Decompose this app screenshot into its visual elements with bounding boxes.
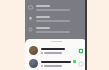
button[interactable]: Setting icon [25,13,87,24]
button[interactable]: Message [25,44,87,57]
other: Setting icon [28,27,33,32]
button[interactable]: Message [78,48,84,54]
button[interactable]: Add contact [25,57,87,70]
button[interactable]: Setting icon [25,2,87,13]
other: Setting icon [28,5,33,10]
button[interactable]: Setting icon [25,24,87,35]
button[interactable]: Add contact [78,61,84,67]
other: Setting icon [28,16,33,21]
